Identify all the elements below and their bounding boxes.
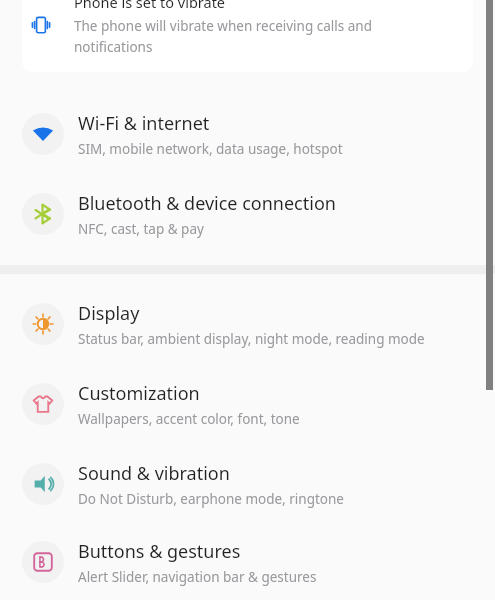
staticText: Do Not Disturb, earphone mode, ringtone	[78, 490, 344, 508]
button[interactable]: Customization	[0, 364, 495, 444]
staticText: Wallpapers, accent color, font, tone	[78, 410, 300, 428]
button[interactable]: Bluetooth & device connection	[0, 174, 495, 254]
staticText: Sound & vibration	[78, 461, 230, 486]
button[interactable]: Buttons & gestures	[0, 524, 495, 600]
staticText: Bluetooth & device connection	[78, 191, 336, 216]
staticText: The phone will vibrate when receiving ca…	[74, 17, 414, 56]
staticText: NFC, cast, tap & pay	[78, 220, 204, 238]
staticText: Phone is set to vibrate	[74, 0, 226, 12]
button[interactable]: Vibrate	[22, 0, 473, 72]
staticText: Buttons & gestures	[78, 539, 241, 564]
staticText: Wi-Fi & internet	[78, 111, 210, 136]
button[interactable]: Sound & vibration	[0, 444, 495, 524]
staticText: SIM, mobile network, data usage, hotspot	[78, 140, 343, 158]
staticText: Display	[78, 301, 140, 326]
button[interactable]: Wi-Fi & internet	[0, 94, 495, 174]
button[interactable]: Display	[0, 284, 495, 364]
staticText: Status bar, ambient display, night mode,…	[78, 330, 425, 348]
staticText: Customization	[78, 381, 200, 406]
other: Vibrate	[30, 14, 52, 36]
staticText: Alert Slider, navigation bar & gestures	[78, 568, 317, 586]
